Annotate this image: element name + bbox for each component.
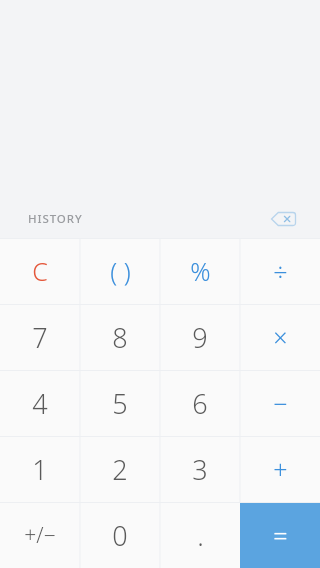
- staticText: +: [273, 452, 288, 486]
- button[interactable]: 4: [0, 370, 80, 436]
- staticText: 8: [112, 319, 128, 356]
- button[interactable]: Backspace: [264, 204, 304, 234]
- button[interactable]: 6: [160, 370, 240, 436]
- staticText: +/−: [24, 521, 56, 550]
- button[interactable]: 3: [160, 436, 240, 502]
- button[interactable]: ÷: [240, 238, 320, 304]
- staticText: 7: [32, 319, 48, 356]
- staticText: 9: [192, 319, 208, 356]
- button[interactable]: ×: [240, 304, 320, 370]
- button[interactable]: =: [240, 502, 320, 568]
- staticText: C: [32, 254, 48, 288]
- staticText: %: [190, 254, 211, 288]
- button[interactable]: 2: [80, 436, 160, 502]
- button[interactable]: %: [160, 238, 240, 304]
- button[interactable]: 7: [0, 304, 80, 370]
- button[interactable]: .: [160, 502, 240, 568]
- button[interactable]: 8: [80, 304, 160, 370]
- staticText: ÷: [273, 254, 288, 288]
- staticText: =: [273, 518, 288, 552]
- staticText: 3: [192, 451, 208, 488]
- button[interactable]: 5: [80, 370, 160, 436]
- button[interactable]: ( ): [80, 238, 160, 304]
- staticText: 1: [32, 451, 48, 488]
- staticText: HISTORY: [28, 211, 83, 227]
- staticText: 4: [32, 385, 48, 422]
- staticText: 2: [112, 451, 128, 488]
- staticText: ×: [273, 320, 288, 354]
- button[interactable]: −: [240, 370, 320, 436]
- staticText: 5: [112, 385, 128, 422]
- button[interactable]: 9: [160, 304, 240, 370]
- staticText: 0: [112, 517, 128, 554]
- staticText: .: [197, 517, 204, 554]
- staticText: −: [273, 386, 288, 420]
- button[interactable]: +: [240, 436, 320, 502]
- button[interactable]: HISTORY: [20, 205, 91, 233]
- button[interactable]: C: [0, 238, 80, 304]
- button[interactable]: 0: [80, 502, 160, 568]
- staticText: ( ): [110, 254, 131, 288]
- staticText: 6: [192, 385, 208, 422]
- button[interactable]: +/−: [0, 502, 80, 568]
- button[interactable]: 1: [0, 436, 80, 502]
